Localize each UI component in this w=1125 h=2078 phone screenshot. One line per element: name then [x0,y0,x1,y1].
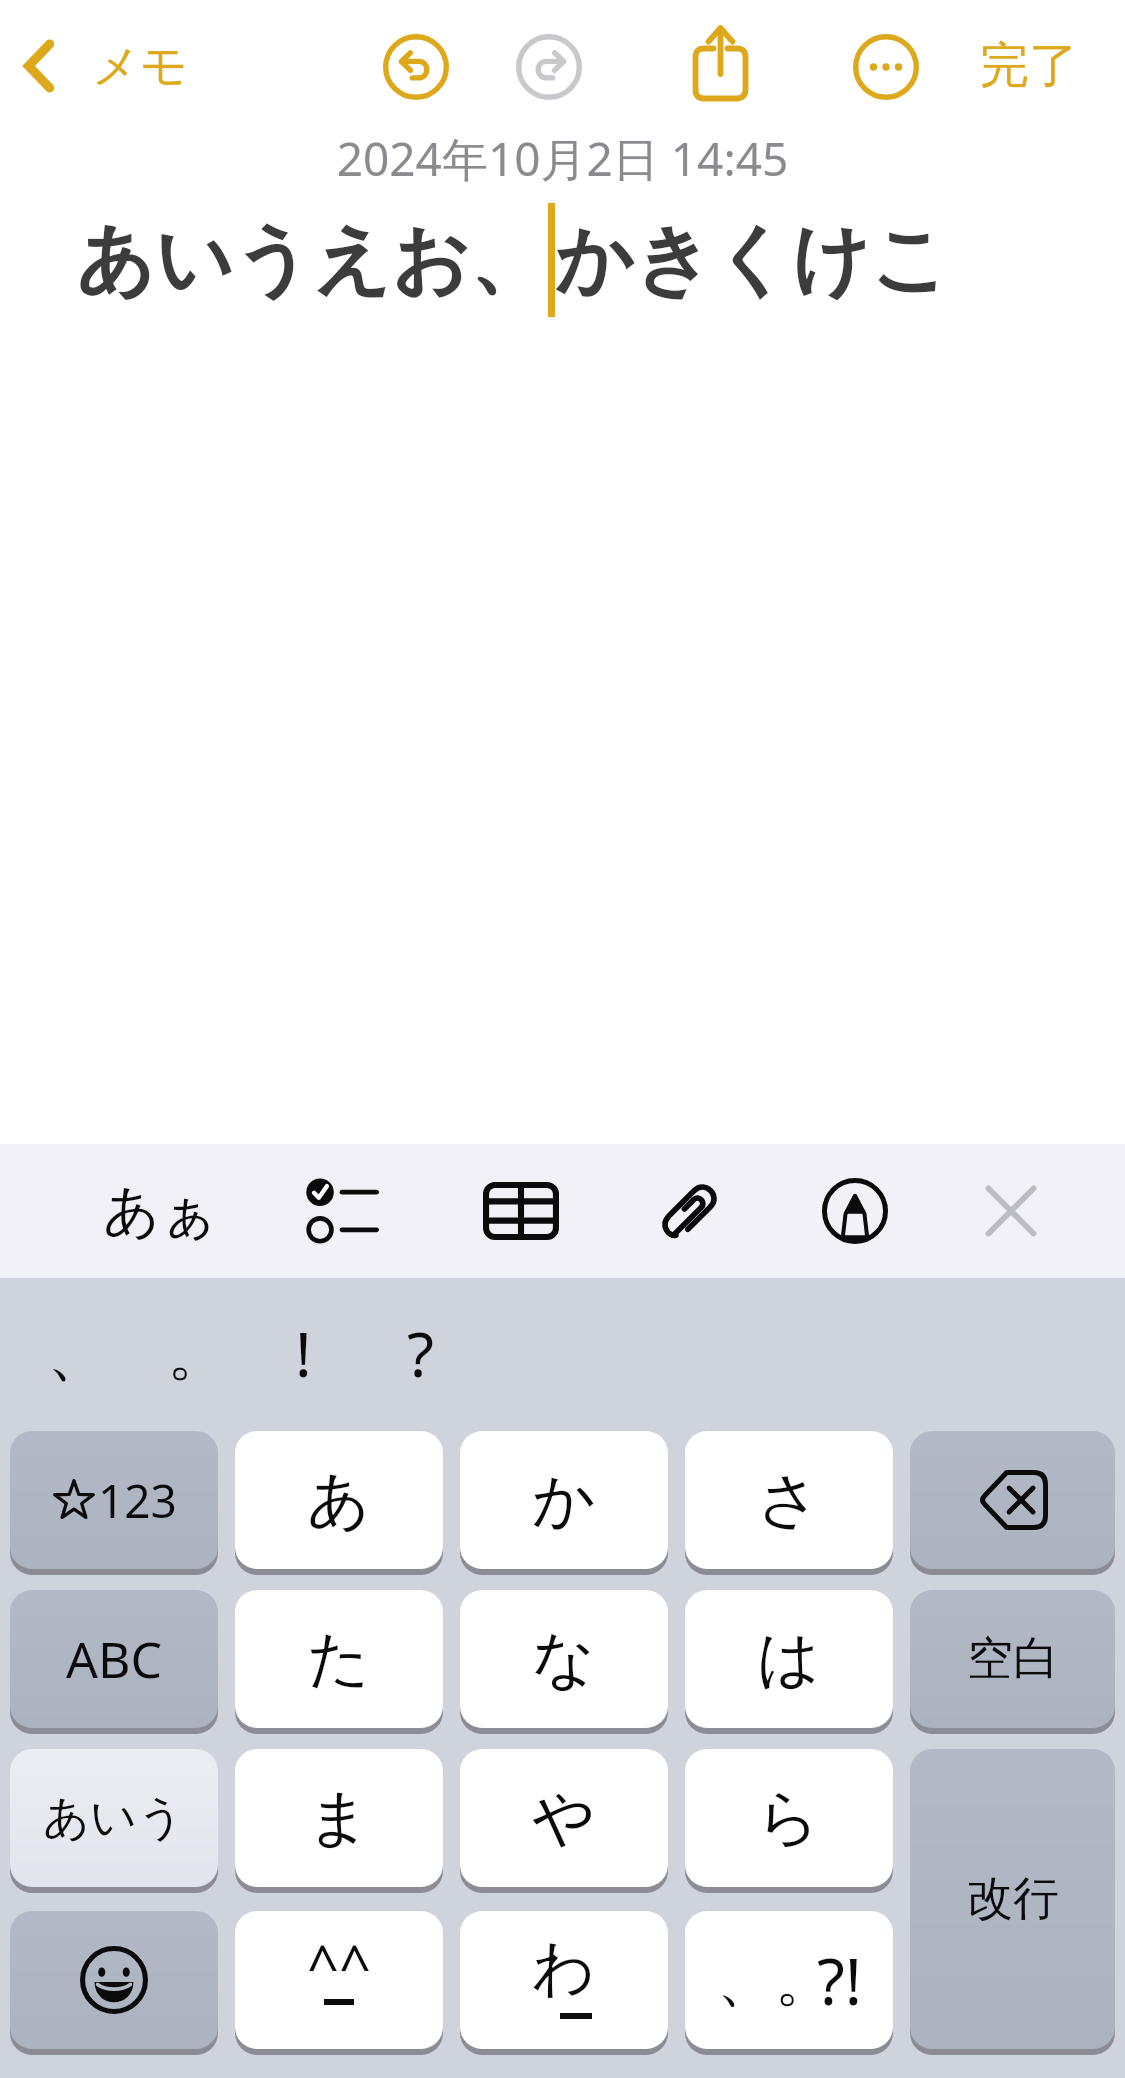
button[interactable]: ら [685,1749,893,1887]
button[interactable]: Attach file [634,1155,746,1267]
button[interactable]: More [831,12,941,122]
staticText: ABC [66,1625,163,1693]
staticText: ?! [817,1937,862,2024]
button[interactable]: は [685,1590,893,1728]
button[interactable]: あぁ [97,1155,223,1267]
button[interactable]: ABC [10,1590,218,1728]
staticText: あいう [43,1789,185,1847]
button[interactable]: Emoji [10,1911,218,2049]
button[interactable]: ! [243,1293,363,1413]
staticText: 、。 [717,1944,833,2017]
button[interactable]: 。 [138,1293,258,1413]
staticText: 、 [47,1314,109,1392]
staticText: あぁ [103,1176,218,1247]
button[interactable]: Redo [494,12,604,122]
staticText: か [532,1461,596,1539]
button[interactable]: あいう [10,1749,218,1887]
staticText: ^^ [307,1926,372,2002]
staticText: ! [295,1311,312,1395]
staticText: は [757,1620,821,1698]
staticText: た [307,1620,371,1698]
staticText: かきくけこ [555,212,950,309]
staticText: や [532,1779,596,1857]
staticText: メモ [92,37,189,96]
button[interactable]: 123 [10,1431,218,1569]
button[interactable]: わ [460,1911,668,2049]
button[interactable]: Undo [361,12,471,122]
staticText: 空白 [967,1630,1059,1688]
button[interactable]: Checklist [286,1155,398,1267]
button[interactable]: 完了 [980,21,1078,111]
staticText: な [532,1620,596,1698]
staticText: 。 [167,1314,229,1392]
staticText: 完了 [980,35,1078,97]
button[interactable]: た [235,1590,443,1728]
button[interactable]: Share [666,12,776,122]
other: Delete [910,1431,1115,1569]
button[interactable]: ? [360,1293,480,1413]
button[interactable]: Table [465,1155,577,1267]
button[interactable]: Hide keyboard [955,1155,1067,1267]
staticText: わ [532,1929,596,2007]
staticText: あ [307,1461,371,1539]
staticText: 2024年10月2日 14:45 [0,127,1125,190]
staticText: 改行 [967,1870,1059,1928]
button[interactable]: 、 [18,1293,138,1413]
button[interactable]: Markup [799,1155,911,1267]
button[interactable]: や [460,1749,668,1887]
button[interactable]: 空白 [910,1590,1115,1728]
button[interactable]: ま [235,1749,443,1887]
button[interactable]: Delete [910,1431,1115,1569]
button[interactable]: 改行 [910,1749,1115,2049]
button[interactable]: メモ [14,18,189,114]
staticText: 123 [98,1469,177,1532]
button[interactable]: あ [235,1431,443,1569]
staticText: ? [407,1311,434,1395]
button[interactable]: ^^ [235,1911,443,2049]
button[interactable]: さ [685,1431,893,1569]
staticText: さ [757,1461,821,1539]
staticText: ま [307,1779,371,1857]
staticText: あいうえお、 [76,212,548,309]
button[interactable]: か [460,1431,668,1569]
staticText: ら [757,1779,821,1857]
button[interactable]: な [460,1590,668,1728]
button[interactable]: 、。 [685,1911,893,2049]
other: Emoji [10,1911,218,2049]
